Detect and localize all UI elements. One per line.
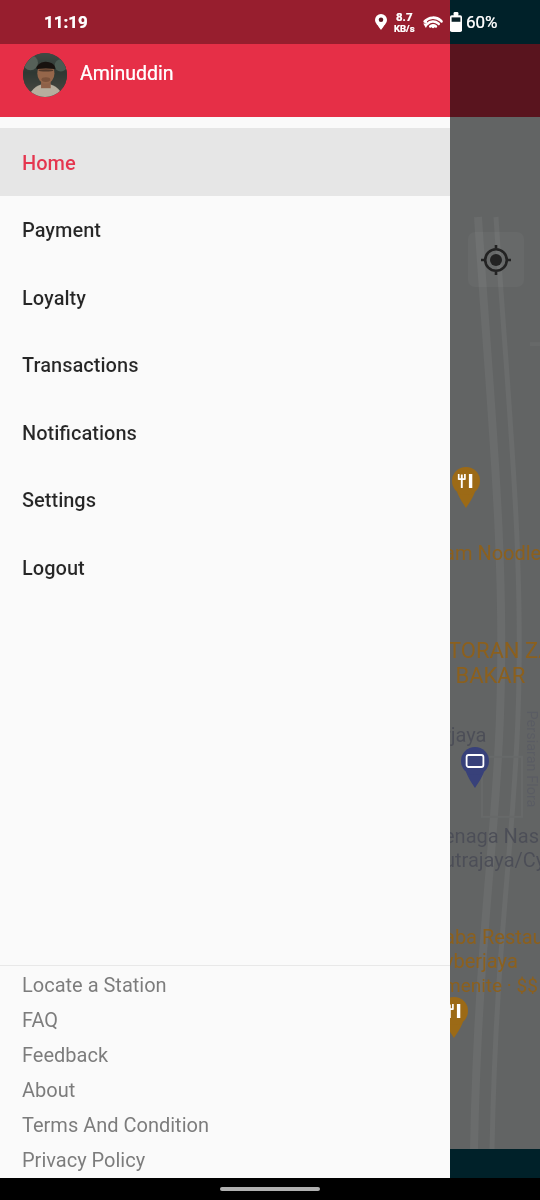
button[interactable]: Loyalty — [0, 263, 450, 331]
staticText: 11:19 — [44, 12, 88, 32]
staticText: Aminuddin — [80, 62, 174, 85]
staticText: enaga Nasi — [444, 824, 540, 847]
staticText: TORAN ZA — [448, 638, 540, 664]
button[interactable]: Settings — [0, 466, 450, 533]
staticText: Terms And Condition — [22, 1113, 209, 1136]
button[interactable]: Terms And Condition — [0, 1107, 450, 1142]
staticText: aba Restau — [444, 925, 540, 948]
staticText: Feedback — [22, 1043, 109, 1066]
staticText: Privacy Policy — [22, 1148, 146, 1171]
staticText: 8.7 — [396, 10, 413, 23]
staticText: I BAKAR — [444, 663, 526, 689]
button[interactable]: Feedback — [0, 1037, 450, 1072]
staticText: Home — [22, 151, 76, 174]
button[interactable]: Logout — [0, 533, 450, 601]
staticText: FAQ — [22, 1008, 59, 1031]
staticText: am Noodle — [444, 541, 540, 564]
button[interactable]: Profile photo — [23, 53, 67, 97]
button[interactable]: About — [0, 1072, 450, 1107]
button[interactable]: Transactions — [0, 331, 450, 398]
staticText: Notifications — [22, 421, 137, 444]
staticText: Transactions — [22, 353, 139, 376]
staticText: Payment — [22, 218, 102, 241]
button[interactable]: FAQ — [0, 1002, 450, 1037]
staticText: Settings — [22, 488, 97, 511]
button[interactable]: Notifications — [0, 398, 450, 466]
staticText: rjaya — [444, 723, 487, 746]
staticText: menite · $$ — [444, 974, 538, 996]
staticText: KB/s — [394, 23, 415, 34]
staticText: Locate a Station — [22, 973, 167, 996]
button[interactable]: Payment — [0, 196, 450, 263]
staticText: 60% — [466, 12, 498, 32]
staticText: utrajaya/Cy — [444, 848, 540, 871]
button[interactable]: Locate a Station — [0, 967, 450, 1002]
staticText: Logout — [22, 556, 85, 579]
staticText: Loyalty — [22, 286, 87, 309]
button[interactable]: My location — [468, 232, 524, 287]
staticText: About — [22, 1078, 76, 1101]
button[interactable]: Privacy Policy — [0, 1142, 450, 1177]
button[interactable]: Home — [0, 128, 450, 196]
staticText: yberjaya — [444, 949, 518, 972]
